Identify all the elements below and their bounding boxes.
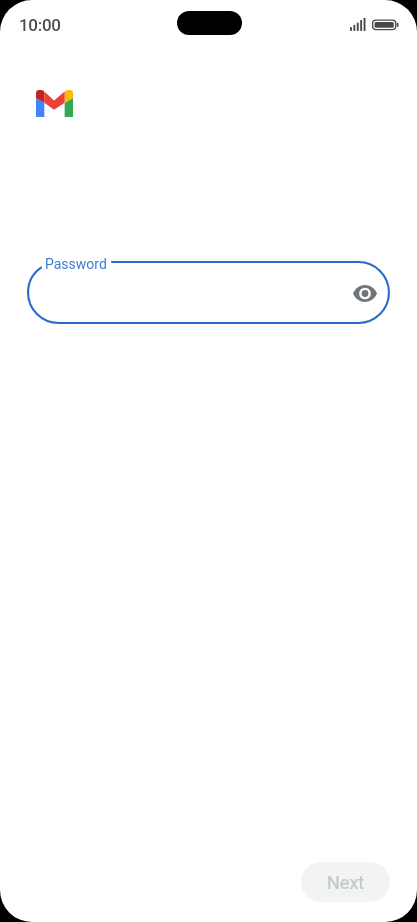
staticText: 10:00 — [19, 15, 61, 35]
button[interactable]: Password — [27, 261, 390, 324]
button[interactable]: Next — [301, 862, 390, 902]
staticText: Password — [45, 256, 107, 272]
staticText: Next — [327, 872, 365, 893]
button[interactable]: Show password — [343, 271, 387, 315]
